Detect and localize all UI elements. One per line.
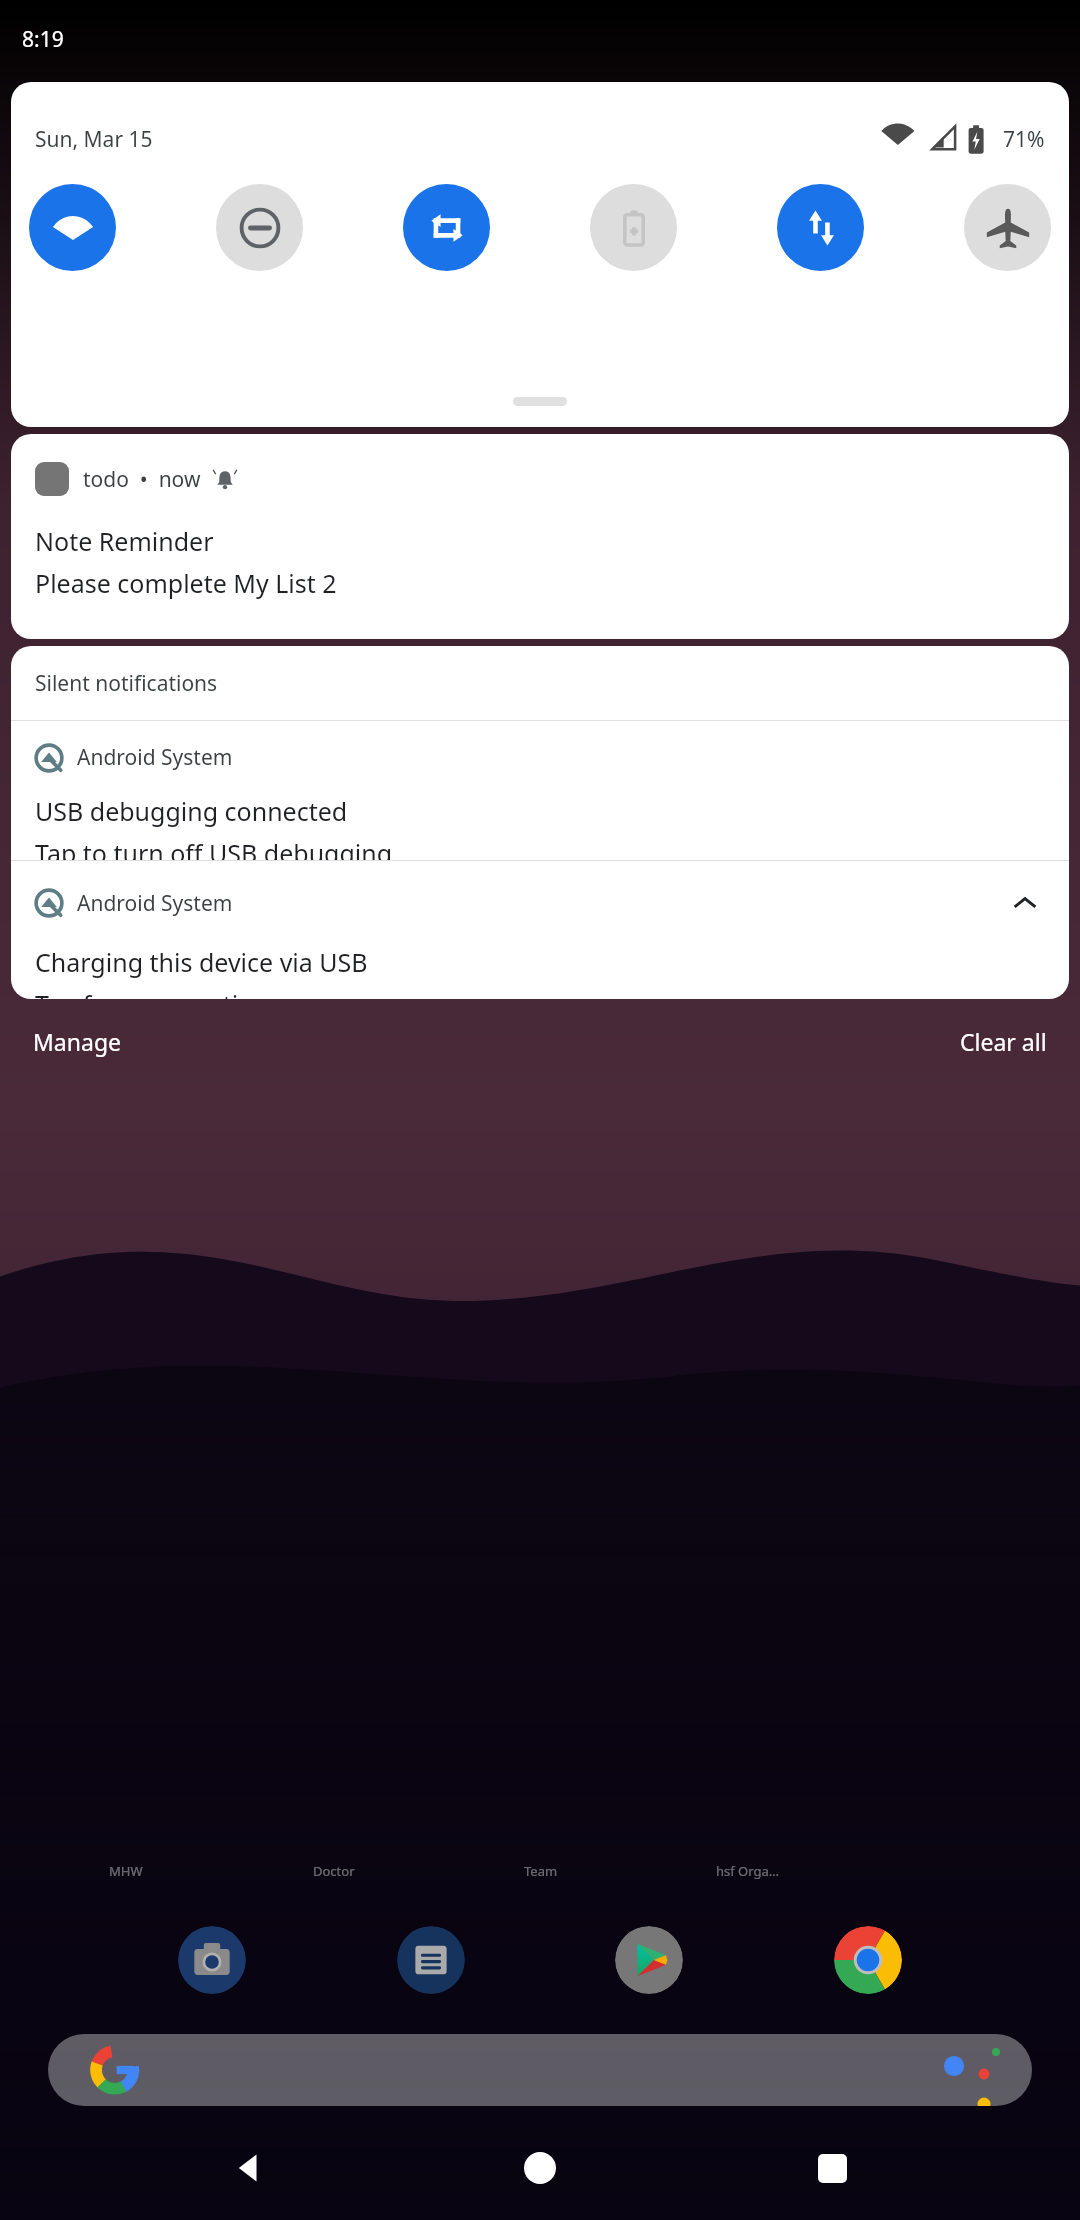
staticText: Doctor	[313, 1862, 355, 1880]
staticText: Android System	[77, 889, 233, 918]
staticText: 71%	[1003, 125, 1045, 154]
staticText: MHW	[109, 1862, 143, 1880]
staticText: hsf Orga…	[716, 1862, 780, 1880]
staticText: Team	[524, 1862, 558, 1880]
staticText: Note Reminder	[35, 524, 214, 558]
button[interactable]: Recent apps	[789, 2125, 875, 2211]
button[interactable]: Battery Saver	[590, 184, 677, 271]
staticText: Please complete My List 2	[35, 566, 337, 600]
button[interactable]: Google Search	[48, 2034, 1032, 2106]
button[interactable]: Camera	[178, 1926, 246, 1994]
button[interactable]: Chrome	[834, 1926, 902, 1994]
button[interactable]: Airplane mode	[964, 184, 1051, 271]
staticText: Tap to turn off USB debugging	[35, 836, 393, 860]
button[interactable]: Expand quick settings	[11, 381, 1069, 421]
button[interactable]: Manage	[11, 1020, 143, 1063]
button[interactable]: Collapse	[1005, 883, 1045, 923]
button[interactable]: Messages	[397, 1926, 465, 1994]
button[interactable]: Back	[206, 2125, 292, 2211]
button[interactable]: Mobile data	[777, 184, 864, 271]
button[interactable]: Play Store	[615, 1926, 683, 1994]
staticText: Tap for more options.	[35, 987, 288, 999]
button[interactable]: Clear all	[938, 1020, 1069, 1063]
staticText: Sun, Mar 15	[35, 125, 153, 154]
staticText: 8:19	[22, 25, 64, 54]
button[interactable]: Wi-Fi	[29, 184, 116, 271]
button[interactable]: Home	[497, 2125, 583, 2211]
staticText: Silent notifications	[35, 669, 218, 698]
button[interactable]: Silent notifications	[11, 646, 1069, 720]
staticText: Charging this device via USB	[35, 945, 368, 979]
button[interactable]: Android System	[11, 721, 1069, 860]
staticText: Clear all	[960, 1026, 1047, 1057]
button[interactable]: todo • now	[11, 434, 1069, 639]
staticText: USB debugging connected	[35, 794, 348, 828]
staticText: Android System	[77, 743, 233, 772]
button[interactable]: Do Not Disturb	[216, 184, 303, 271]
button[interactable]: Android System	[11, 861, 1069, 999]
staticText: Manage	[33, 1026, 121, 1057]
button[interactable]: Auto-rotate	[403, 184, 490, 271]
other: Alerting	[213, 467, 237, 491]
staticText: todo • now	[83, 465, 201, 494]
